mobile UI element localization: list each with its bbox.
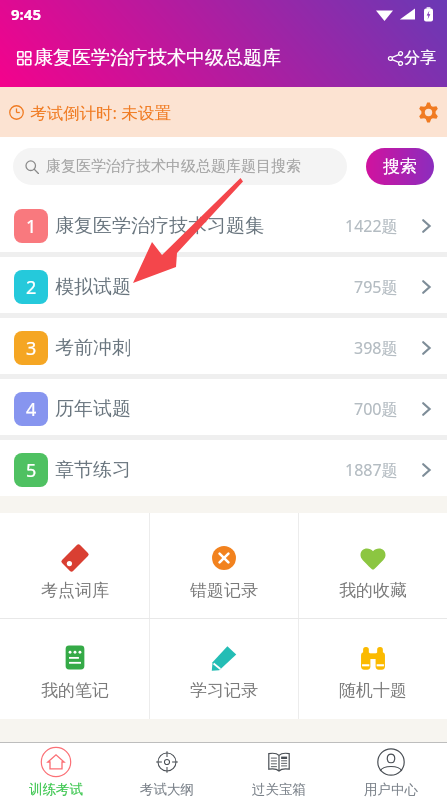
button[interactable]: 考试大纲: [111, 743, 223, 798]
staticText: 我的收藏: [339, 580, 407, 601]
staticText: 考前冲刺: [55, 336, 131, 360]
staticText: 1422题: [345, 215, 398, 237]
button[interactable]: 过关宝箱: [223, 743, 335, 798]
staticText: 4: [26, 397, 37, 422]
button[interactable]: 考点词库: [0, 513, 149, 618]
staticText: 章节练习: [55, 458, 131, 482]
staticText: 795题: [354, 276, 398, 298]
staticText: 考试大纲: [140, 781, 194, 798]
staticText: 9:45: [11, 4, 41, 24]
staticText: 398题: [354, 337, 398, 359]
staticText: 过关宝箱: [252, 781, 306, 798]
staticText: 搜索: [383, 156, 417, 177]
button[interactable]: 3: [0, 318, 447, 374]
button[interactable]: 我的笔记: [0, 619, 149, 719]
button[interactable]: Settings: [406, 90, 447, 134]
staticText: 康复医学治疗技术习题集: [55, 214, 264, 238]
staticText: 用户中心: [364, 781, 418, 798]
staticText: 错题记录: [190, 580, 258, 601]
staticText: 700题: [354, 398, 398, 420]
button[interactable]: 康复医学治疗技术中级总题库题目搜索: [13, 148, 347, 185]
staticText: 学习记录: [190, 680, 258, 701]
staticText: 5: [26, 458, 37, 483]
button[interactable]: 我的收藏: [299, 513, 447, 618]
button[interactable]: 4: [0, 379, 447, 435]
staticText: 考试倒计时: 未设置: [30, 101, 171, 124]
button[interactable]: 随机十题: [299, 619, 447, 719]
button[interactable]: 训练考试: [0, 743, 111, 798]
button[interactable]: 5: [0, 440, 447, 496]
staticText: 康复医学治疗技术中级总题库题目搜索: [46, 157, 301, 176]
button[interactable]: 1: [0, 196, 447, 252]
staticText: 1: [26, 214, 37, 239]
staticText: 2: [26, 275, 37, 300]
button[interactable]: 2: [0, 257, 447, 313]
button[interactable]: 分享: [377, 38, 447, 78]
staticText: 我的笔记: [41, 680, 109, 701]
button[interactable]: 学习记录: [150, 619, 298, 719]
staticText: 康复医学治疗技术中级总题库: [34, 46, 281, 70]
button[interactable]: 错题记录: [150, 513, 298, 618]
staticText: 3: [26, 336, 37, 361]
staticText: 考点词库: [41, 580, 109, 601]
staticText: 1887题: [345, 459, 398, 481]
staticText: 历年试题: [55, 397, 131, 421]
button[interactable]: 搜索: [366, 148, 434, 185]
staticText: 分享: [404, 48, 436, 68]
staticText: 模拟试题: [55, 275, 131, 299]
staticText: 训练考试: [29, 781, 83, 798]
staticText: 随机十题: [339, 680, 407, 701]
button[interactable]: 用户中心: [335, 743, 447, 798]
